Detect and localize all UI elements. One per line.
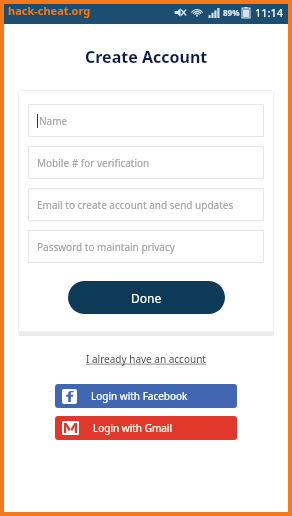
staticText: Done <box>131 290 162 306</box>
staticText: 11:14 <box>255 5 284 20</box>
staticText: 89% <box>223 7 240 18</box>
staticText: Name <box>39 114 68 128</box>
staticText: I already have an account <box>86 352 206 366</box>
button[interactable]: Login with Facebook <box>55 384 237 408</box>
staticText: Email to create account and send updates <box>37 198 234 212</box>
staticText: hack-cheat.org <box>8 3 91 18</box>
button[interactable]: Mobile # for verification <box>28 146 264 179</box>
staticText: Mobile # for verification <box>37 156 150 170</box>
button[interactable]: Login with Gmail <box>55 416 237 440</box>
staticText: Password to maintain privacy <box>37 240 175 254</box>
button[interactable]: Email to create account and send updates <box>28 188 264 221</box>
button[interactable]: Password to maintain privacy <box>28 230 264 263</box>
button[interactable]: Done <box>68 281 225 314</box>
button[interactable]: Name <box>28 104 264 137</box>
staticText: Create Account <box>85 46 208 68</box>
staticText: Login with Gmail <box>93 421 173 435</box>
staticText: Login with Facebook <box>91 389 188 403</box>
button[interactable]: I already have an account <box>82 350 210 368</box>
